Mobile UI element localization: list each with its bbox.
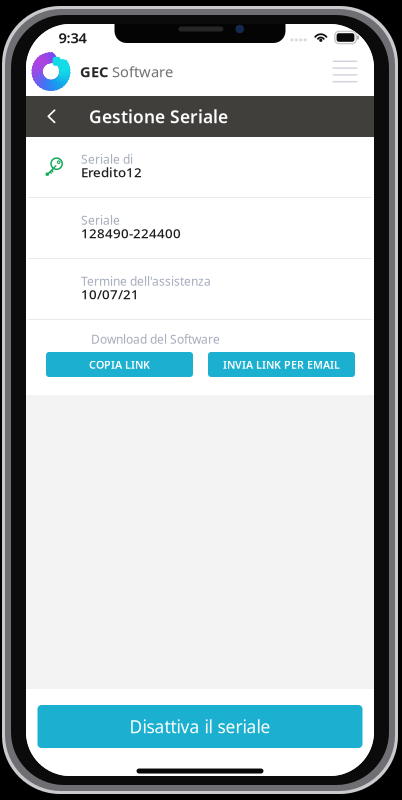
staticText: COPIA LINK (89, 357, 150, 372)
button[interactable]: INVIA LINK PER EMAIL (208, 352, 355, 377)
staticText: 9:34 (58, 28, 86, 47)
staticText: Seriale di (81, 151, 133, 167)
staticText: Software (108, 62, 173, 81)
button[interactable]: Menu (323, 48, 374, 94)
button[interactable]: Back (26, 96, 74, 137)
staticText: INVIA LINK PER EMAIL (223, 357, 340, 372)
staticText: Eredito12 (81, 163, 142, 181)
staticText: 10/07/21 (81, 285, 139, 303)
staticText: Disattiva il seriale (129, 715, 270, 738)
staticText: Seriale (81, 212, 120, 228)
staticText: 128490-224400 (81, 224, 181, 242)
button[interactable]: Disattiva il seriale (37, 705, 362, 748)
staticText: Download del Software (91, 331, 220, 347)
staticText: Termine dell'assistenza (81, 273, 211, 289)
button[interactable]: COPIA LINK (46, 352, 193, 377)
staticText: GEC (80, 62, 108, 81)
staticText: Gestione Seriale (89, 105, 228, 128)
